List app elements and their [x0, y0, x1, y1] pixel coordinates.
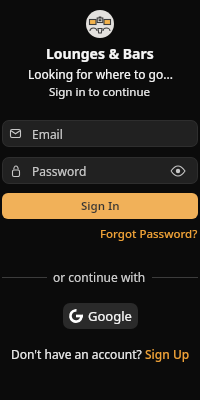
staticText: Password: [32, 163, 87, 179]
staticText: Sign In: [81, 198, 120, 214]
staticText: Email: [32, 126, 63, 142]
staticText: Google: [88, 307, 132, 325]
staticText: Don't have an account?: [11, 346, 145, 362]
staticText: Sign Up: [145, 346, 190, 362]
staticText: or continue with: [53, 269, 146, 285]
staticText: Forgot Password?: [100, 226, 198, 242]
staticText: Lounges & Bars: [46, 44, 154, 63]
staticText: Sign in to continue: [49, 84, 151, 100]
staticText: Looking for where to go...: [28, 66, 173, 82]
